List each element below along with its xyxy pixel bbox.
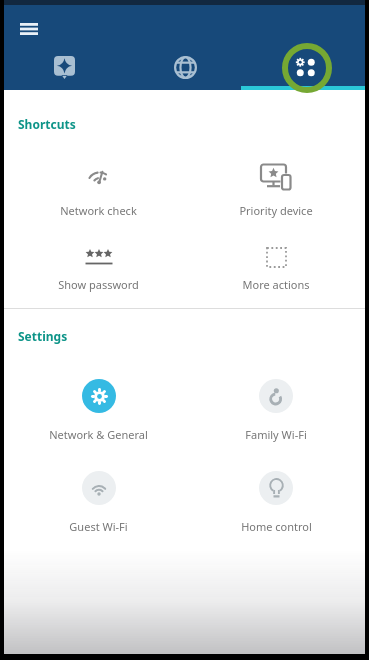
staticText: More actions bbox=[242, 277, 310, 292]
button[interactable] bbox=[245, 45, 365, 90]
button[interactable]: Network check bbox=[10, 160, 187, 218]
staticText: Show password bbox=[58, 277, 139, 292]
staticText: Priority device bbox=[239, 203, 313, 218]
staticText: Shortcuts bbox=[18, 116, 76, 132]
button[interactable]: More actions bbox=[187, 240, 365, 292]
button[interactable]: Show password bbox=[10, 240, 187, 292]
staticText: Network & General bbox=[49, 427, 148, 442]
button[interactable] bbox=[125, 45, 245, 90]
staticText: Family Wi-Fi bbox=[245, 427, 307, 442]
button[interactable] bbox=[4, 45, 125, 90]
button[interactable]: Family Wi-Fi bbox=[187, 379, 365, 442]
button[interactable]: Guest Wi-Fi bbox=[10, 471, 187, 534]
staticText: Settings bbox=[18, 328, 68, 344]
button[interactable]: Priority device bbox=[187, 160, 365, 218]
button[interactable] bbox=[14, 18, 44, 40]
staticText: Network check bbox=[60, 203, 137, 218]
button[interactable]: Network & General bbox=[10, 379, 187, 442]
staticText: Guest Wi-Fi bbox=[69, 519, 128, 534]
staticText: Home control bbox=[241, 519, 312, 534]
button[interactable]: Home control bbox=[187, 471, 365, 534]
